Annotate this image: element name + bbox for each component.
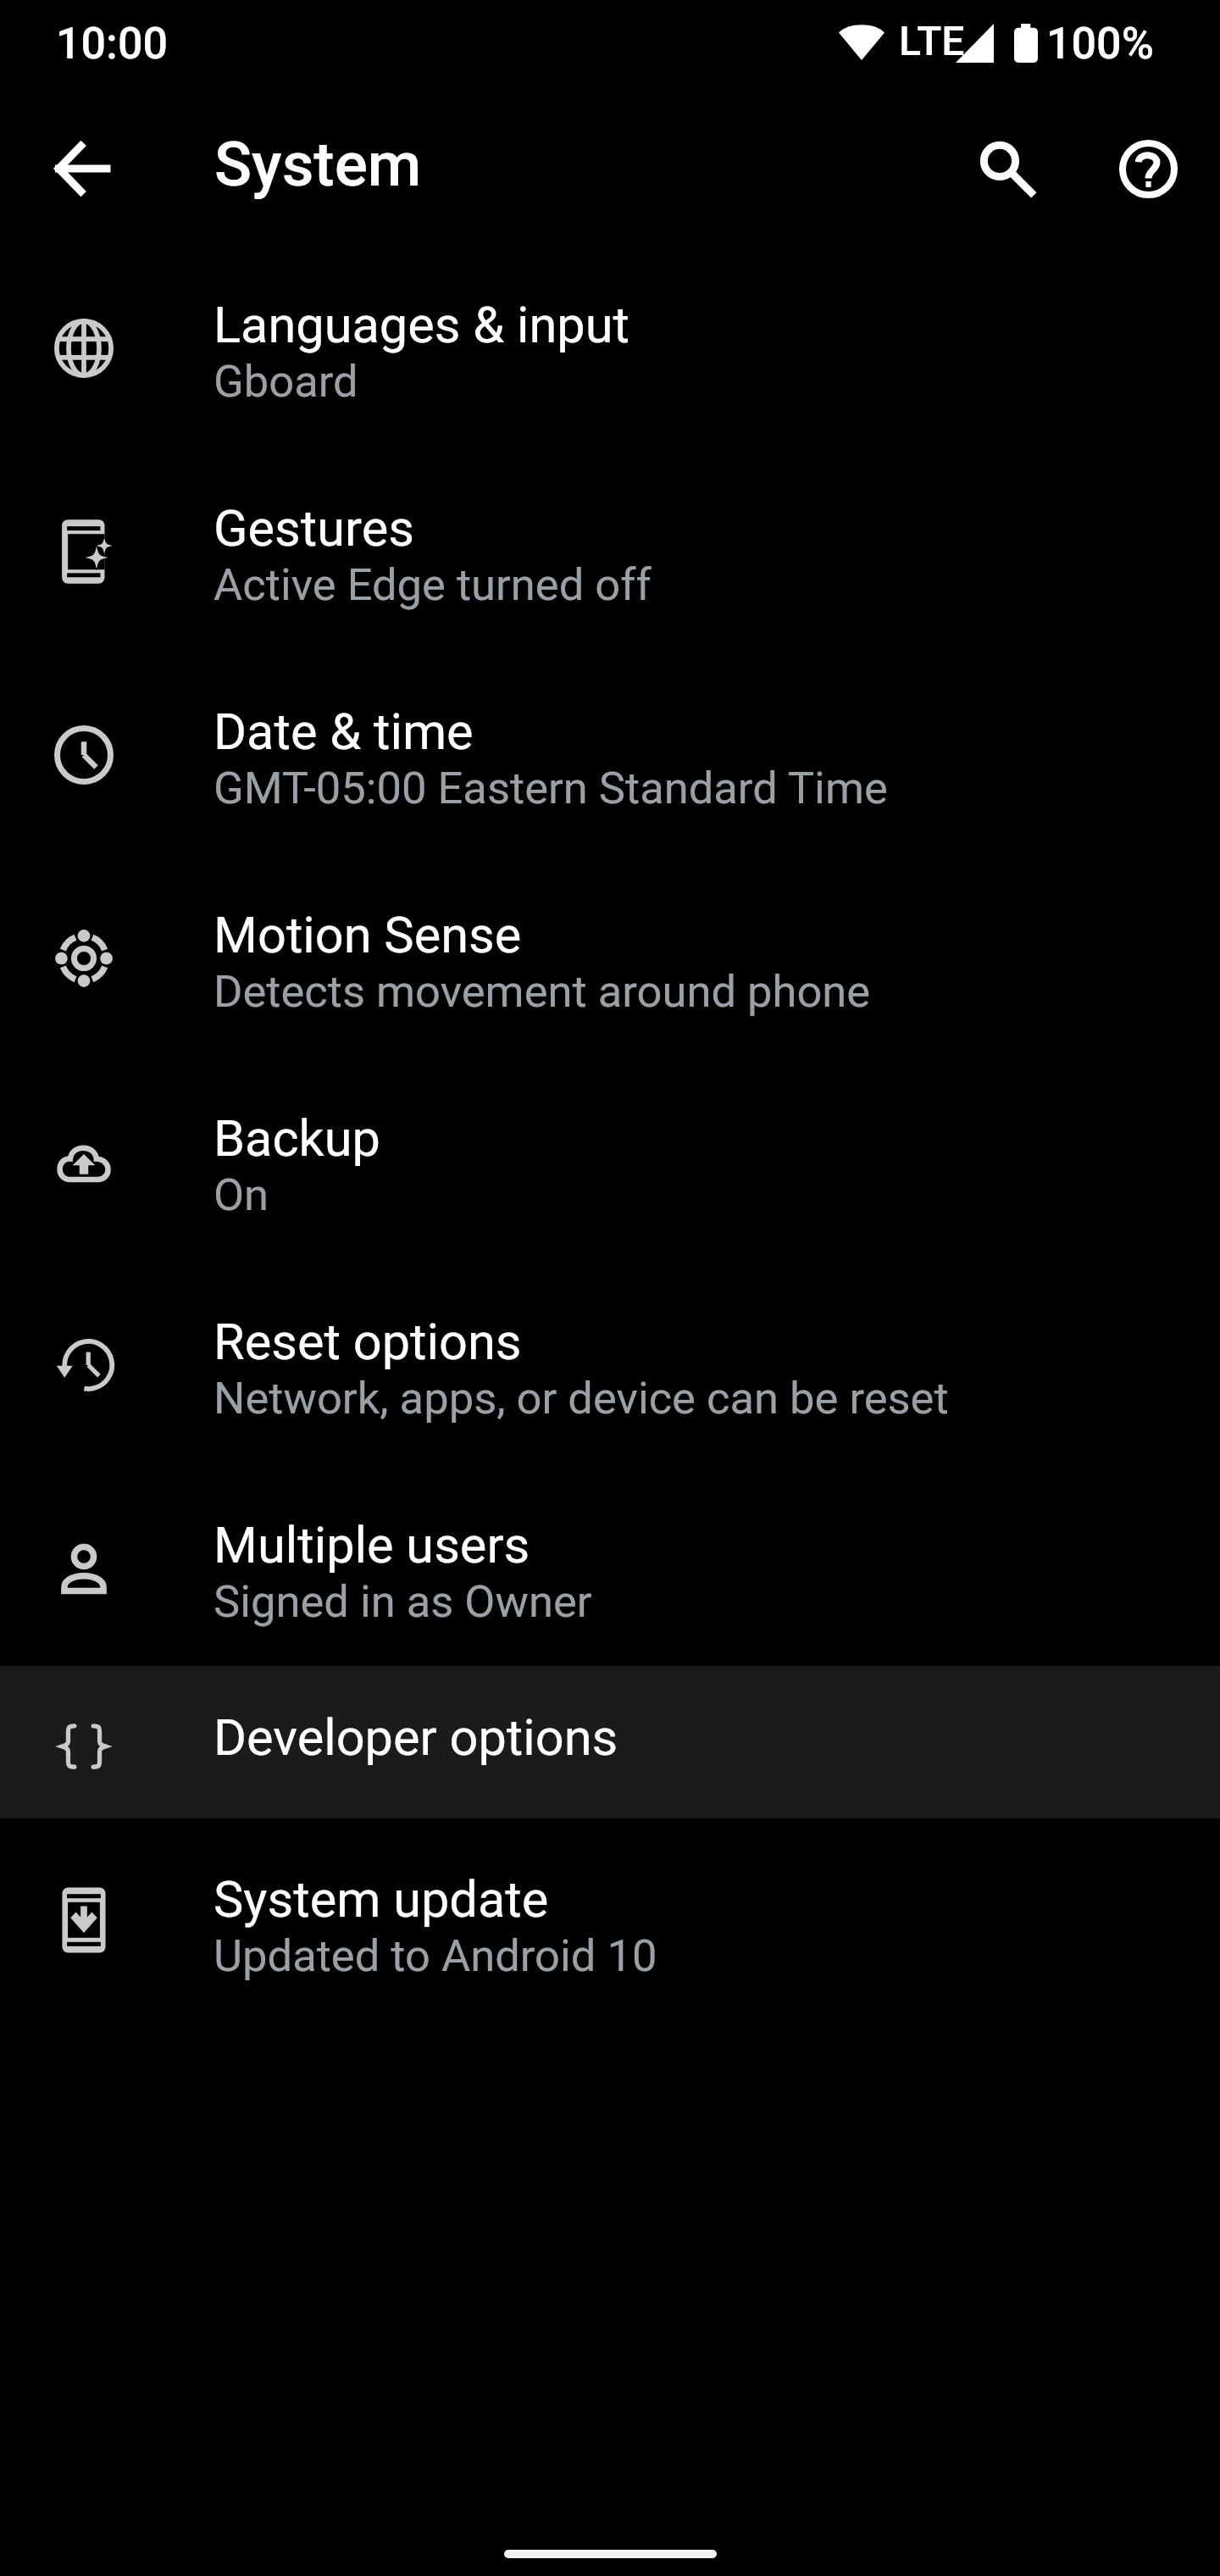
staticText: Reset options <box>213 1312 522 1371</box>
button[interactable]: Developer options <box>0 1666 1220 1818</box>
button[interactable]: Navigate up <box>21 109 140 228</box>
staticText: Languages & input <box>213 295 630 354</box>
staticText: System update <box>213 1869 549 1929</box>
staticText: Gboard <box>213 355 358 408</box>
button[interactable]: Motion Sense <box>0 852 1220 1056</box>
staticText: Signed in as Owner <box>213 1575 592 1628</box>
button[interactable]: Multiple users <box>0 1463 1220 1666</box>
button[interactable]: Reset options <box>0 1259 1220 1463</box>
button[interactable]: Backup <box>0 1056 1220 1259</box>
staticText: LTE <box>899 17 965 65</box>
button[interactable]: Gestures <box>0 446 1220 649</box>
button[interactable]: System update <box>0 1818 1220 2022</box>
staticText: Developer options <box>213 1707 618 1767</box>
staticText: Backup <box>213 1108 380 1168</box>
staticText: Active Edge turned off <box>213 558 652 611</box>
button[interactable]: Date & time <box>0 649 1220 852</box>
staticText: Detects movement around phone <box>213 965 871 1018</box>
staticText: System <box>214 128 422 201</box>
button[interactable]: Languages & input <box>0 242 1220 446</box>
staticText: Updated to Android 10 <box>213 1929 657 1982</box>
staticText: GMT-05:00 Eastern Standard Time <box>213 762 888 814</box>
staticText: 10:00 <box>56 17 169 69</box>
staticText: Gestures <box>213 498 414 558</box>
staticText: Multiple users <box>213 1515 530 1574</box>
button[interactable]: Search <box>946 108 1065 227</box>
staticText: 100% <box>1046 17 1154 69</box>
button[interactable]: Help <box>1089 109 1207 228</box>
staticText: Motion Sense <box>213 905 522 964</box>
staticText: Network, apps, or device can be reset <box>213 1372 949 1424</box>
staticText: Date & time <box>213 702 474 761</box>
staticText: On <box>213 1169 269 1221</box>
